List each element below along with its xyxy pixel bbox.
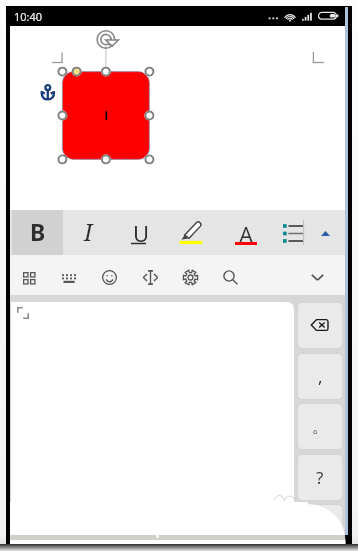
button[interactable]: ? xyxy=(297,454,343,501)
staticText: 10:40 xyxy=(14,9,43,24)
staticText: B xyxy=(30,216,46,247)
button[interactable]: Text field xyxy=(130,255,170,295)
button[interactable]: More xyxy=(297,504,343,551)
button[interactable]: Backspace xyxy=(297,302,343,349)
button[interactable] xyxy=(10,26,345,210)
staticText: U xyxy=(133,218,150,248)
staticText: , xyxy=(318,365,323,388)
button[interactable]: Search xyxy=(210,255,250,295)
button[interactable]: Font colour xyxy=(224,210,270,255)
button[interactable]: Collapse xyxy=(298,255,338,295)
button[interactable]: Grid xyxy=(9,255,49,295)
staticText: ? xyxy=(316,466,324,489)
button[interactable]: Keyboard xyxy=(49,255,89,295)
button[interactable]: Settings xyxy=(170,255,210,295)
button[interactable]: Emoji xyxy=(89,255,129,295)
button[interactable]: I xyxy=(63,210,113,255)
button[interactable]: Highlight xyxy=(173,210,219,255)
button[interactable]: Bulleted list xyxy=(273,210,313,255)
button[interactable]: 。 xyxy=(297,403,343,450)
staticText: A xyxy=(239,219,254,249)
button[interactable]: B xyxy=(12,210,63,255)
button[interactable]: Expand toolbar xyxy=(306,210,345,255)
button[interactable]: U xyxy=(124,210,172,255)
staticText: 。 xyxy=(312,416,329,437)
staticText: I xyxy=(84,216,93,247)
button[interactable]: , xyxy=(297,353,343,400)
